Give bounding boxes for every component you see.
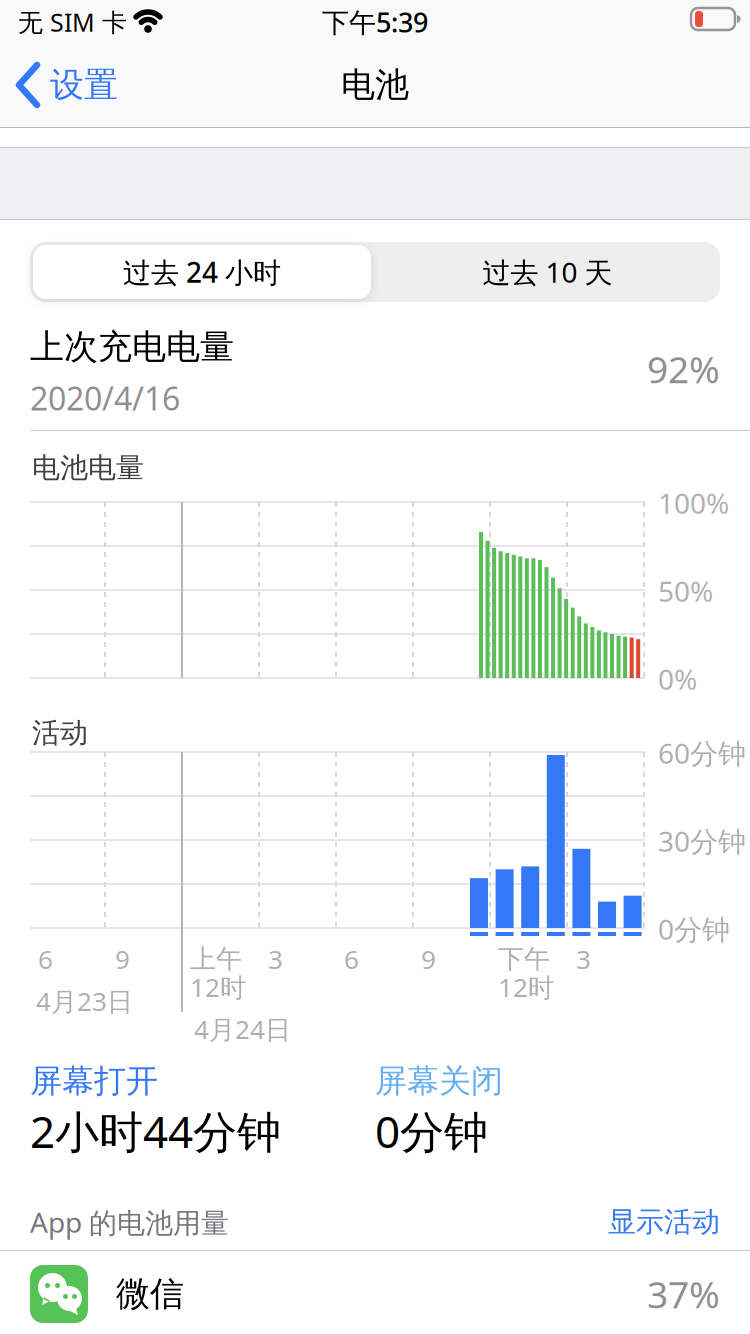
staticText: 设置 — [50, 64, 118, 106]
staticText: 过去 10 天 — [482, 253, 612, 291]
staticText: 电池 — [341, 64, 409, 106]
button[interactable]: 过去 24 小时 — [33, 245, 371, 299]
staticText: 4月24日 — [194, 1011, 291, 1047]
staticText: 6 — [344, 941, 359, 977]
staticText: 下午5:39 — [322, 4, 428, 40]
staticText: 过去 24 小时 — [123, 253, 281, 291]
staticText: 2小时44分钟 — [30, 1101, 281, 1161]
staticText: 屏幕关闭 — [375, 1061, 503, 1101]
staticText: 0分钟 — [375, 1101, 488, 1161]
staticText: 12时 — [498, 969, 554, 1005]
staticText: 92% — [647, 344, 720, 394]
staticText: 屏幕打开 — [30, 1061, 158, 1101]
staticText: 上午 — [190, 943, 242, 975]
staticText: 9 — [115, 941, 130, 977]
staticText: 2020/4/16 — [30, 376, 180, 420]
staticText: 12时 — [190, 969, 246, 1005]
button[interactable]: 过去 10 天 — [375, 242, 720, 302]
button[interactable]: 微信 — [0, 1252, 750, 1334]
staticText: 无 SIM 卡 — [18, 5, 127, 39]
staticText: 37% — [647, 1269, 720, 1319]
staticText: 活动 — [32, 715, 88, 751]
staticText: 3 — [576, 941, 591, 977]
staticText: 50% — [658, 572, 713, 610]
staticText: 3 — [268, 941, 283, 977]
staticText: 60分钟 — [658, 734, 746, 772]
staticText: 30分钟 — [658, 822, 746, 860]
staticText: 下午 — [498, 943, 550, 975]
staticText: 9 — [421, 941, 436, 977]
staticText: 6 — [38, 941, 53, 977]
staticText: 4月23日 — [36, 983, 133, 1019]
staticText: 上次充电电量 — [30, 326, 234, 368]
staticText: 微信 — [116, 1273, 184, 1315]
staticText: 100% — [658, 484, 729, 522]
button[interactable]: 返回设置 — [16, 62, 118, 108]
button[interactable]: 显示活动 — [560, 1205, 720, 1239]
staticText: 0分钟 — [658, 910, 730, 948]
staticText: App 的电池用量 — [30, 1203, 229, 1241]
staticText: 显示活动 — [608, 1204, 720, 1240]
staticText: 0% — [658, 660, 697, 698]
staticText: 电池电量 — [32, 450, 144, 486]
